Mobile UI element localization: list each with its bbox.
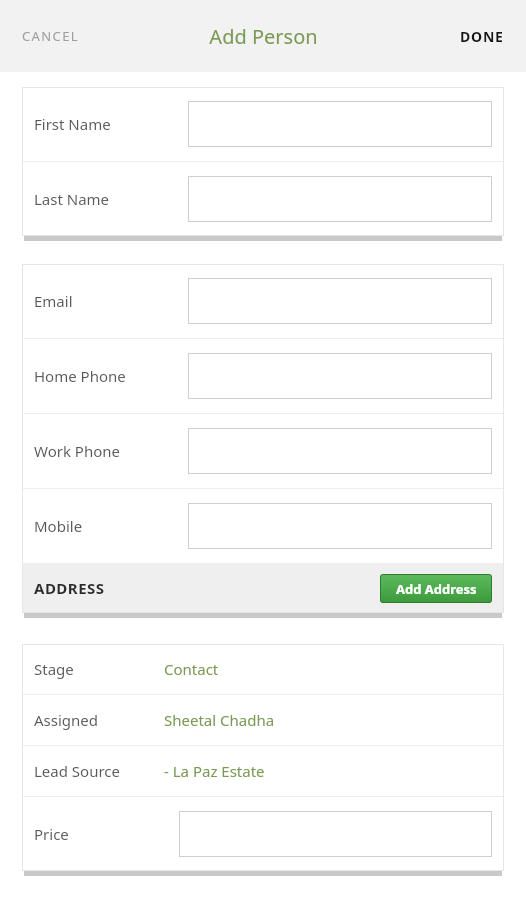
staticText: Sheetal Chadha: [164, 710, 275, 730]
button[interactable]: Home Phone: [22, 339, 504, 413]
staticText: Lead Source: [34, 761, 120, 781]
staticText: DONE: [460, 27, 504, 46]
button[interactable]: Stage: [22, 644, 504, 694]
staticText: CANCEL: [22, 27, 80, 45]
button[interactable]: [188, 278, 492, 324]
button[interactable]: Add Address: [380, 574, 492, 603]
staticText: Assigned: [34, 710, 99, 730]
button[interactable]: [179, 811, 492, 857]
button[interactable]: [188, 428, 492, 474]
button[interactable]: DONE: [448, 17, 516, 56]
button[interactable]: [188, 101, 492, 147]
staticText: Mobile: [34, 516, 83, 536]
button[interactable]: Mobile: [22, 489, 504, 563]
staticText: Add Address: [396, 580, 477, 598]
button[interactable]: [188, 503, 492, 549]
staticText: - La Paz Estate: [164, 761, 265, 781]
button[interactable]: First Name: [22, 87, 504, 161]
button[interactable]: Work Phone: [22, 414, 504, 488]
button[interactable]: Price: [22, 797, 504, 871]
button[interactable]: Email: [22, 264, 504, 338]
button[interactable]: [188, 353, 492, 399]
staticText: Stage: [34, 659, 74, 679]
staticText: Contact: [164, 659, 219, 679]
staticText: Email: [34, 291, 73, 311]
staticText: First Name: [34, 114, 111, 134]
button[interactable]: [188, 176, 492, 222]
staticText: Price: [34, 824, 69, 844]
staticText: Home Phone: [34, 366, 126, 386]
staticText: Add Person: [209, 23, 318, 50]
staticText: ADDRESS: [34, 578, 105, 598]
staticText: Work Phone: [34, 441, 120, 461]
button[interactable]: Lead Source: [22, 746, 504, 796]
button[interactable]: Assigned: [22, 695, 504, 745]
button[interactable]: Last Name: [22, 162, 504, 236]
staticText: Last Name: [34, 189, 110, 209]
button[interactable]: CANCEL: [10, 17, 92, 55]
